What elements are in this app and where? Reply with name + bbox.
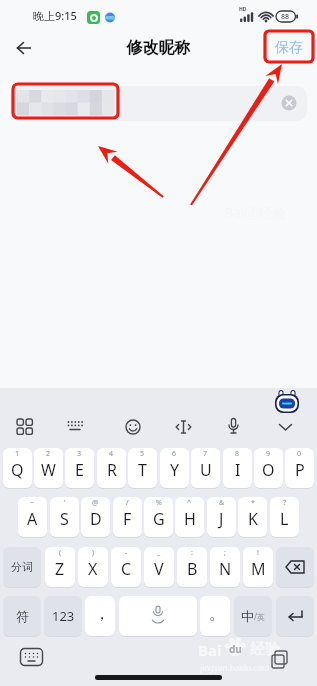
staticText: M [251,558,266,580]
button[interactable]: @ [81,497,110,537]
button[interactable]: 9 [254,448,283,488]
staticText: 修改昵称 [0,38,317,58]
staticText: 0 [297,449,302,459]
staticText: J [219,508,224,530]
staticText: C [121,558,132,580]
button[interactable] [119,596,197,636]
staticText: D [90,508,102,530]
button[interactable]: & [207,497,236,537]
staticText: R [107,459,117,481]
button[interactable]: 符 [3,596,41,636]
staticText: 7 [203,449,208,459]
button[interactable]: * [238,497,267,537]
staticText: 分词 [11,560,33,574]
staticText: ? [283,498,287,508]
staticText: 5 [140,449,145,459]
staticText: % [156,498,162,508]
staticText: H [184,508,196,530]
staticText: @ [92,498,99,508]
staticText: 符 [16,608,29,624]
staticText: Z [55,558,65,580]
staticText: - [125,548,128,558]
button[interactable]: 。 [200,596,230,636]
button[interactable]: 123 [44,596,82,636]
button[interactable]: 2 [34,448,63,488]
staticText: * [251,498,255,508]
staticText: 晚上9:15 [33,8,77,23]
button[interactable]: 0 [285,448,314,488]
button[interactable]: 分词 [3,547,41,587]
staticText: 1 [15,449,20,459]
staticText: jingyan.baidu.com [200,662,270,673]
staticText: 3 [77,449,82,459]
staticText: 保存 [275,39,303,57]
button[interactable]: 1 [3,448,32,488]
button[interactable]: 7 [191,448,220,488]
staticText: HD [239,6,247,13]
staticText: 2 [46,449,51,459]
button[interactable]: ? [270,497,299,537]
staticText: Q [11,459,24,481]
button[interactable]: ， [85,596,115,636]
button[interactable]: ~ [18,497,47,537]
button[interactable]: ! [243,547,273,587]
staticText: Y [170,459,180,481]
staticText: K [248,508,258,530]
button[interactable]: 中 [234,596,272,636]
staticText: O [262,459,275,481]
button[interactable]: ( [45,547,75,587]
staticText: _ [157,548,161,558]
staticText: L [280,508,289,530]
button[interactable]: _ [144,547,174,587]
staticText: X [88,558,98,580]
staticText: & [219,498,225,508]
staticText: I [235,459,241,481]
staticText: ( [59,548,62,558]
button[interactable]: 5 [128,448,157,488]
staticText: 经验 [250,640,280,659]
button[interactable]: 6 [160,448,189,488]
button[interactable]: 3 [65,448,94,488]
staticText: ^ [187,498,192,508]
staticText: A [27,508,38,530]
button[interactable]: ^ [175,497,204,537]
staticText: 。 [209,604,225,624]
button[interactable]: : [177,547,207,587]
staticText: 123 [52,607,75,625]
staticText: ) [92,548,95,558]
button[interactable]: ) [78,547,108,587]
button[interactable]: 4 [97,448,126,488]
staticText: S [60,508,69,530]
staticText: ~ [30,498,35,508]
staticText: 88 [281,12,290,22]
staticText: W [41,459,56,481]
staticText: du [229,642,242,656]
button[interactable] [10,86,307,121]
staticText: ; [224,548,226,558]
staticText: ! [257,548,259,558]
staticText: 6 [172,449,177,459]
button[interactable]: 8 [223,448,252,488]
button[interactable]: / [113,497,142,537]
button[interactable]: 保存 [270,37,308,59]
staticText: N [219,558,232,580]
button[interactable]: % [144,497,173,537]
staticText: : [191,548,193,558]
staticText: 4 [109,449,114,459]
button[interactable] [276,596,314,636]
staticText: /英 [254,611,265,622]
staticText: U [200,459,212,481]
button[interactable]: - [111,547,141,587]
button[interactable] [8,36,40,60]
button[interactable] [276,547,314,587]
staticText: ' [64,498,66,508]
staticText: E [75,459,84,481]
staticText: ， [94,604,110,624]
staticText: P [295,459,305,481]
staticText: / [126,498,129,508]
staticText: Bai [198,640,222,660]
staticText: T [138,459,147,481]
button[interactable]: ' [50,497,79,537]
button[interactable]: ; [210,547,240,587]
